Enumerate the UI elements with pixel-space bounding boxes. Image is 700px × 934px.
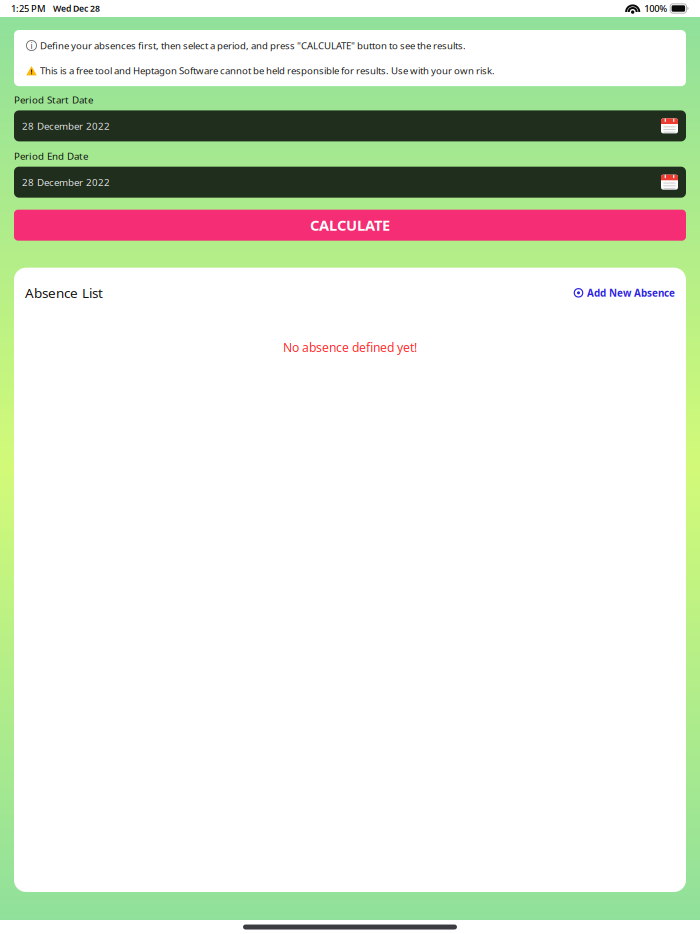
button[interactable]: 28 December 2022 [14, 110, 686, 141]
button[interactable]: 28 December 2022 [14, 167, 686, 198]
staticText: This is a free tool and Heptagon Softwar… [40, 64, 495, 77]
staticText: 100% [644, 2, 667, 15]
staticText: Period End Date [14, 149, 88, 163]
staticText: Wed Dec 28 [53, 3, 100, 14]
staticText: Absence List [25, 284, 103, 302]
staticText: 28 December 2022 [22, 119, 110, 133]
button[interactable]: Add New Absence [574, 286, 675, 299]
staticText: Add New Absence [587, 286, 675, 299]
staticText: CALCULATE [310, 215, 390, 235]
staticText: i [30, 40, 32, 51]
button[interactable]: CALCULATE [14, 210, 686, 241]
staticText: 28 December 2022 [22, 175, 110, 189]
staticText: Period Start Date [14, 93, 93, 106]
staticText: No absence defined yet! [283, 339, 417, 355]
staticText: 1:25 PM [11, 2, 46, 15]
staticText: Define your absences first, then select … [40, 39, 466, 52]
